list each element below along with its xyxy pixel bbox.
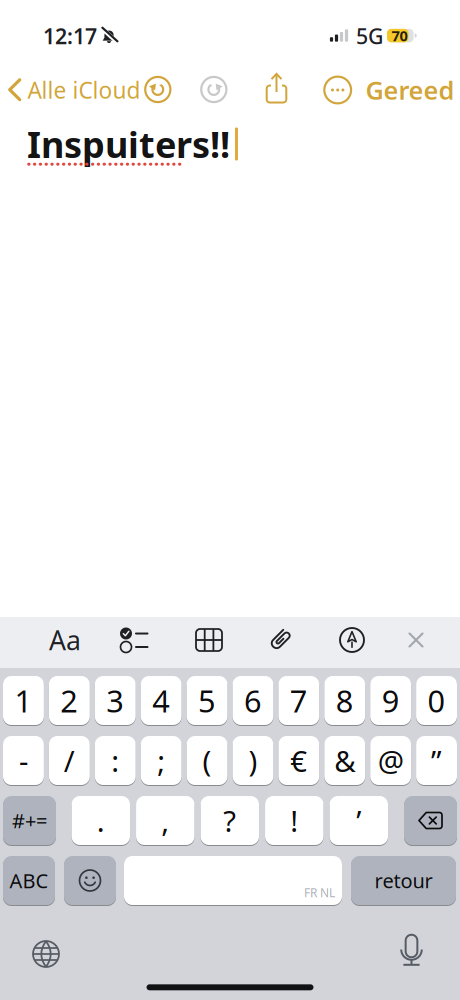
- staticText: ”: [431, 741, 442, 780]
- button[interactable]: -: [3, 735, 44, 785]
- staticText: 8: [336, 680, 354, 721]
- button[interactable]: Gereed: [365, 73, 454, 107]
- staticText: ,: [161, 801, 169, 840]
- staticText: FR NL: [304, 885, 335, 900]
- staticText: 12:17: [43, 22, 97, 50]
- button[interactable]: Spatie: [124, 855, 342, 905]
- button[interactable]: :: [95, 735, 136, 785]
- button[interactable]: ;: [141, 735, 182, 785]
- staticText: 1: [14, 680, 32, 721]
- button[interactable]: Herstel: [144, 76, 171, 103]
- button[interactable]: Emoji: [64, 855, 116, 905]
- button[interactable]: !: [265, 795, 324, 845]
- button[interactable]: #+=: [3, 795, 56, 845]
- staticText: Inspuiters!!: [27, 120, 230, 168]
- staticText: 70: [391, 26, 407, 45]
- button[interactable]: 6: [232, 675, 273, 725]
- staticText: retour: [374, 867, 432, 894]
- staticText: !: [290, 801, 298, 840]
- staticText: ;: [157, 741, 165, 780]
- button[interactable]: 3: [95, 675, 136, 725]
- button[interactable]: Markeringen: [339, 627, 365, 653]
- staticText: ): [248, 741, 257, 780]
- staticText: /: [64, 741, 75, 780]
- button[interactable]: ?: [201, 795, 259, 845]
- button[interactable]: Checklist: [119, 626, 149, 654]
- button[interactable]: ): [232, 735, 273, 785]
- button[interactable]: ’: [330, 795, 388, 845]
- staticText: (: [202, 741, 211, 780]
- button[interactable]: Opmaak: [49, 622, 81, 658]
- button[interactable]: Volgend toetsenbord: [32, 940, 60, 968]
- staticText: ABC: [9, 867, 48, 894]
- button[interactable]: 1: [3, 675, 44, 725]
- staticText: 5G: [356, 22, 384, 50]
- button[interactable]: ”: [416, 735, 457, 785]
- button[interactable]: ABC: [3, 855, 55, 905]
- button[interactable]: /: [49, 735, 90, 785]
- button[interactable]: Opnieuw: [200, 76, 227, 103]
- button[interactable]: 5: [187, 675, 227, 725]
- staticText: &: [334, 741, 355, 780]
- staticText: #+=: [12, 807, 47, 834]
- staticText: €: [290, 741, 307, 780]
- button[interactable]: Alle iCloud: [8, 75, 168, 105]
- staticText: 4: [152, 680, 170, 721]
- button[interactable]: Sluit: [408, 632, 424, 648]
- staticText: 3: [106, 680, 124, 721]
- staticText: 5: [198, 680, 216, 721]
- staticText: 9: [382, 680, 400, 721]
- staticText: Aa: [49, 622, 81, 658]
- button[interactable]: @: [370, 735, 411, 785]
- button[interactable]: 7: [278, 675, 319, 725]
- staticText: 0: [427, 680, 445, 721]
- staticText: 2: [60, 680, 78, 721]
- staticText: :: [111, 741, 119, 780]
- staticText: Gereed: [365, 73, 454, 107]
- button[interactable]: (: [187, 735, 227, 785]
- button[interactable]: 4: [141, 675, 182, 725]
- button[interactable]: 9: [370, 675, 411, 725]
- staticText: 7: [290, 680, 308, 721]
- staticText: ’: [356, 801, 361, 840]
- button[interactable]: Dicteer: [399, 934, 423, 968]
- staticText: @: [378, 741, 404, 780]
- staticText: .: [97, 801, 105, 840]
- button[interactable]: Bijlage: [266, 625, 296, 655]
- button[interactable]: &: [324, 735, 365, 785]
- button[interactable]: Tabel: [195, 628, 223, 652]
- staticText: Alle iCloud: [27, 75, 140, 105]
- button[interactable]: Verwijder: [404, 795, 457, 845]
- button[interactable]: 2: [49, 675, 90, 725]
- button[interactable]: retour: [351, 855, 456, 905]
- staticText: ?: [223, 801, 236, 840]
- button[interactable]: 8: [324, 675, 365, 725]
- staticText: -: [19, 741, 28, 780]
- button[interactable]: €: [278, 735, 319, 785]
- staticText: 6: [244, 680, 262, 721]
- button[interactable]: 0: [416, 675, 457, 725]
- button[interactable]: Deel: [262, 72, 288, 104]
- button[interactable]: .: [71, 795, 130, 845]
- button[interactable]: ,: [136, 795, 195, 845]
- button[interactable]: Meer: [324, 76, 352, 104]
